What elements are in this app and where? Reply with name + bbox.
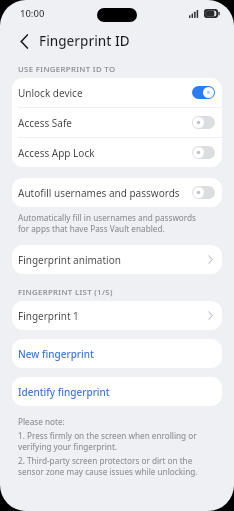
button[interactable]: Off bbox=[192, 186, 215, 199]
staticText: Fingerprint ID bbox=[39, 32, 130, 50]
staticText: Fingerprint animation bbox=[18, 253, 208, 267]
staticText: Please note: bbox=[18, 416, 65, 427]
staticText: 2. Third-party screen protectors or dirt… bbox=[18, 455, 198, 477]
button[interactable]: Off bbox=[192, 146, 215, 159]
staticText: 1. Press firmly on the screen when enrol… bbox=[18, 430, 197, 452]
button[interactable]: Access App Lock bbox=[12, 138, 222, 167]
button[interactable]: Autofill usernames and passwords bbox=[12, 178, 222, 207]
button[interactable]: Identify fingerprint bbox=[12, 377, 222, 406]
staticText: New fingerprint bbox=[18, 347, 94, 361]
button[interactable]: Off bbox=[192, 116, 215, 129]
button[interactable]: Fingerprint animation bbox=[12, 245, 222, 274]
staticText: 10:00 bbox=[20, 7, 45, 20]
staticText: Fingerprint 1 bbox=[18, 309, 208, 323]
button[interactable]: Access Safe bbox=[12, 108, 222, 138]
staticText: Identify fingerprint bbox=[18, 385, 110, 399]
staticText: Unlock device bbox=[18, 86, 192, 100]
button[interactable]: On bbox=[192, 86, 215, 99]
button[interactable]: Fingerprint 1 bbox=[12, 301, 222, 330]
staticText: Access Safe bbox=[18, 116, 192, 130]
staticText: Autofill usernames and passwords bbox=[18, 186, 192, 200]
button[interactable]: Unlock device bbox=[12, 78, 222, 108]
staticText: Access App Lock bbox=[18, 146, 192, 160]
staticText: FINGERPRINT LIST (1/5) bbox=[18, 287, 113, 298]
button[interactable]: New fingerprint bbox=[12, 339, 222, 368]
staticText: USE FINGERPRINT ID TO bbox=[18, 64, 116, 75]
staticText: Automatically fill in usernames and pass… bbox=[18, 212, 196, 234]
button[interactable]: Back bbox=[14, 31, 34, 51]
